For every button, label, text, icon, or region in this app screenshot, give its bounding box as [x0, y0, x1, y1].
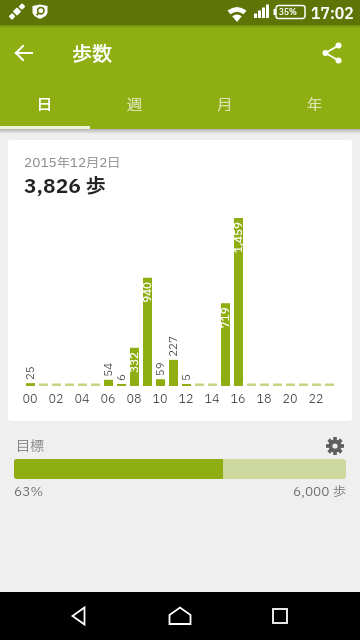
button[interactable]: 2015年12月2日 [8, 140, 352, 421]
staticText: 月 [217, 94, 233, 116]
button[interactable] [56, 592, 104, 640]
button[interactable]: 月 [180, 81, 270, 129]
button[interactable] [316, 37, 348, 69]
staticText: 6,000 歩 [293, 482, 346, 501]
staticText: 35% [279, 7, 297, 19]
button[interactable]: 週 [90, 81, 180, 129]
button[interactable] [8, 37, 40, 69]
staticText: 年 [307, 94, 323, 116]
button[interactable]: 日 [0, 81, 90, 129]
staticText: 2015年12月2日 [24, 153, 121, 172]
staticText: 歩数 [72, 40, 112, 70]
staticText: 日 [37, 94, 53, 116]
staticText: 17:02 [311, 3, 354, 25]
staticText: 3,826 歩 [24, 172, 106, 202]
staticText: 目標 [16, 436, 44, 457]
staticText: 週 [127, 94, 143, 116]
button[interactable] [324, 435, 346, 457]
button[interactable] [256, 592, 304, 640]
staticText: 63% [14, 482, 44, 501]
button[interactable]: 年 [270, 81, 360, 129]
button[interactable] [156, 592, 204, 640]
